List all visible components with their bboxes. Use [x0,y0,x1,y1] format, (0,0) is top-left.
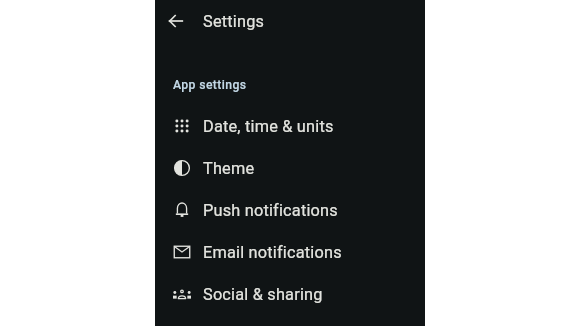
button[interactable]: Social & sharing [155,273,425,315]
staticText: Social & sharing [203,285,323,304]
staticText: Settings [203,12,265,31]
staticText: Push notifications [203,201,338,220]
button[interactable]: Back [160,5,192,37]
staticText: Date, time & units [203,117,334,136]
button[interactable]: Date, time & units [155,105,425,147]
button[interactable]: Push notifications [155,189,425,231]
staticText: App settings [173,78,247,92]
staticText: Email notifications [203,243,342,262]
button[interactable]: Theme [155,147,425,189]
button[interactable]: Email notifications [155,231,425,273]
staticText: Theme [203,159,255,178]
